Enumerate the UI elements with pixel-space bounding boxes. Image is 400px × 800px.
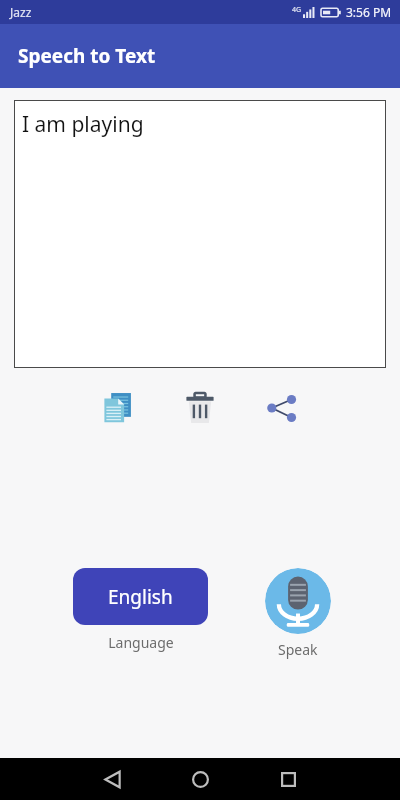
staticText: Jazz	[10, 4, 32, 20]
button[interactable]: Home	[180, 759, 220, 799]
staticText: I am playing	[22, 110, 144, 139]
button[interactable]: Copy	[96, 386, 140, 430]
button[interactable]: English	[73, 568, 208, 625]
button[interactable]: Share	[260, 386, 304, 430]
staticText: English	[108, 584, 173, 610]
button[interactable]: Recent apps	[268, 759, 308, 799]
button[interactable]: Speak	[265, 568, 331, 634]
button[interactable]: Delete	[178, 386, 222, 430]
staticText: 4G	[292, 5, 302, 15]
staticText: Language	[108, 633, 174, 652]
button[interactable]: I am playing	[14, 100, 386, 368]
staticText: Speech to Text	[18, 43, 156, 69]
staticText: Speak	[278, 640, 318, 659]
button[interactable]: Back	[92, 759, 132, 799]
staticText: 3:56 PM	[346, 4, 392, 20]
